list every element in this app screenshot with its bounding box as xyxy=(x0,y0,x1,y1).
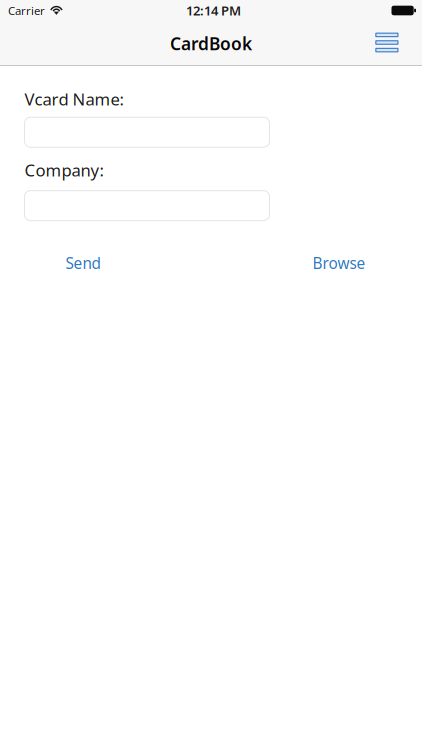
button[interactable]: Send xyxy=(54,247,111,280)
staticText: Send xyxy=(65,253,100,274)
button[interactable]: Company xyxy=(24,191,269,221)
staticText: Company: xyxy=(24,159,103,181)
staticText: CardBook xyxy=(170,32,252,55)
staticText: Carrier xyxy=(8,3,45,18)
button[interactable]: Menu xyxy=(363,21,410,64)
staticText: 12:14 PM xyxy=(186,2,241,19)
staticText: Vcard Name: xyxy=(24,88,123,110)
staticText: Browse xyxy=(312,253,365,274)
button[interactable]: Browse xyxy=(301,247,376,280)
button[interactable]: Vcard Name xyxy=(24,117,269,147)
